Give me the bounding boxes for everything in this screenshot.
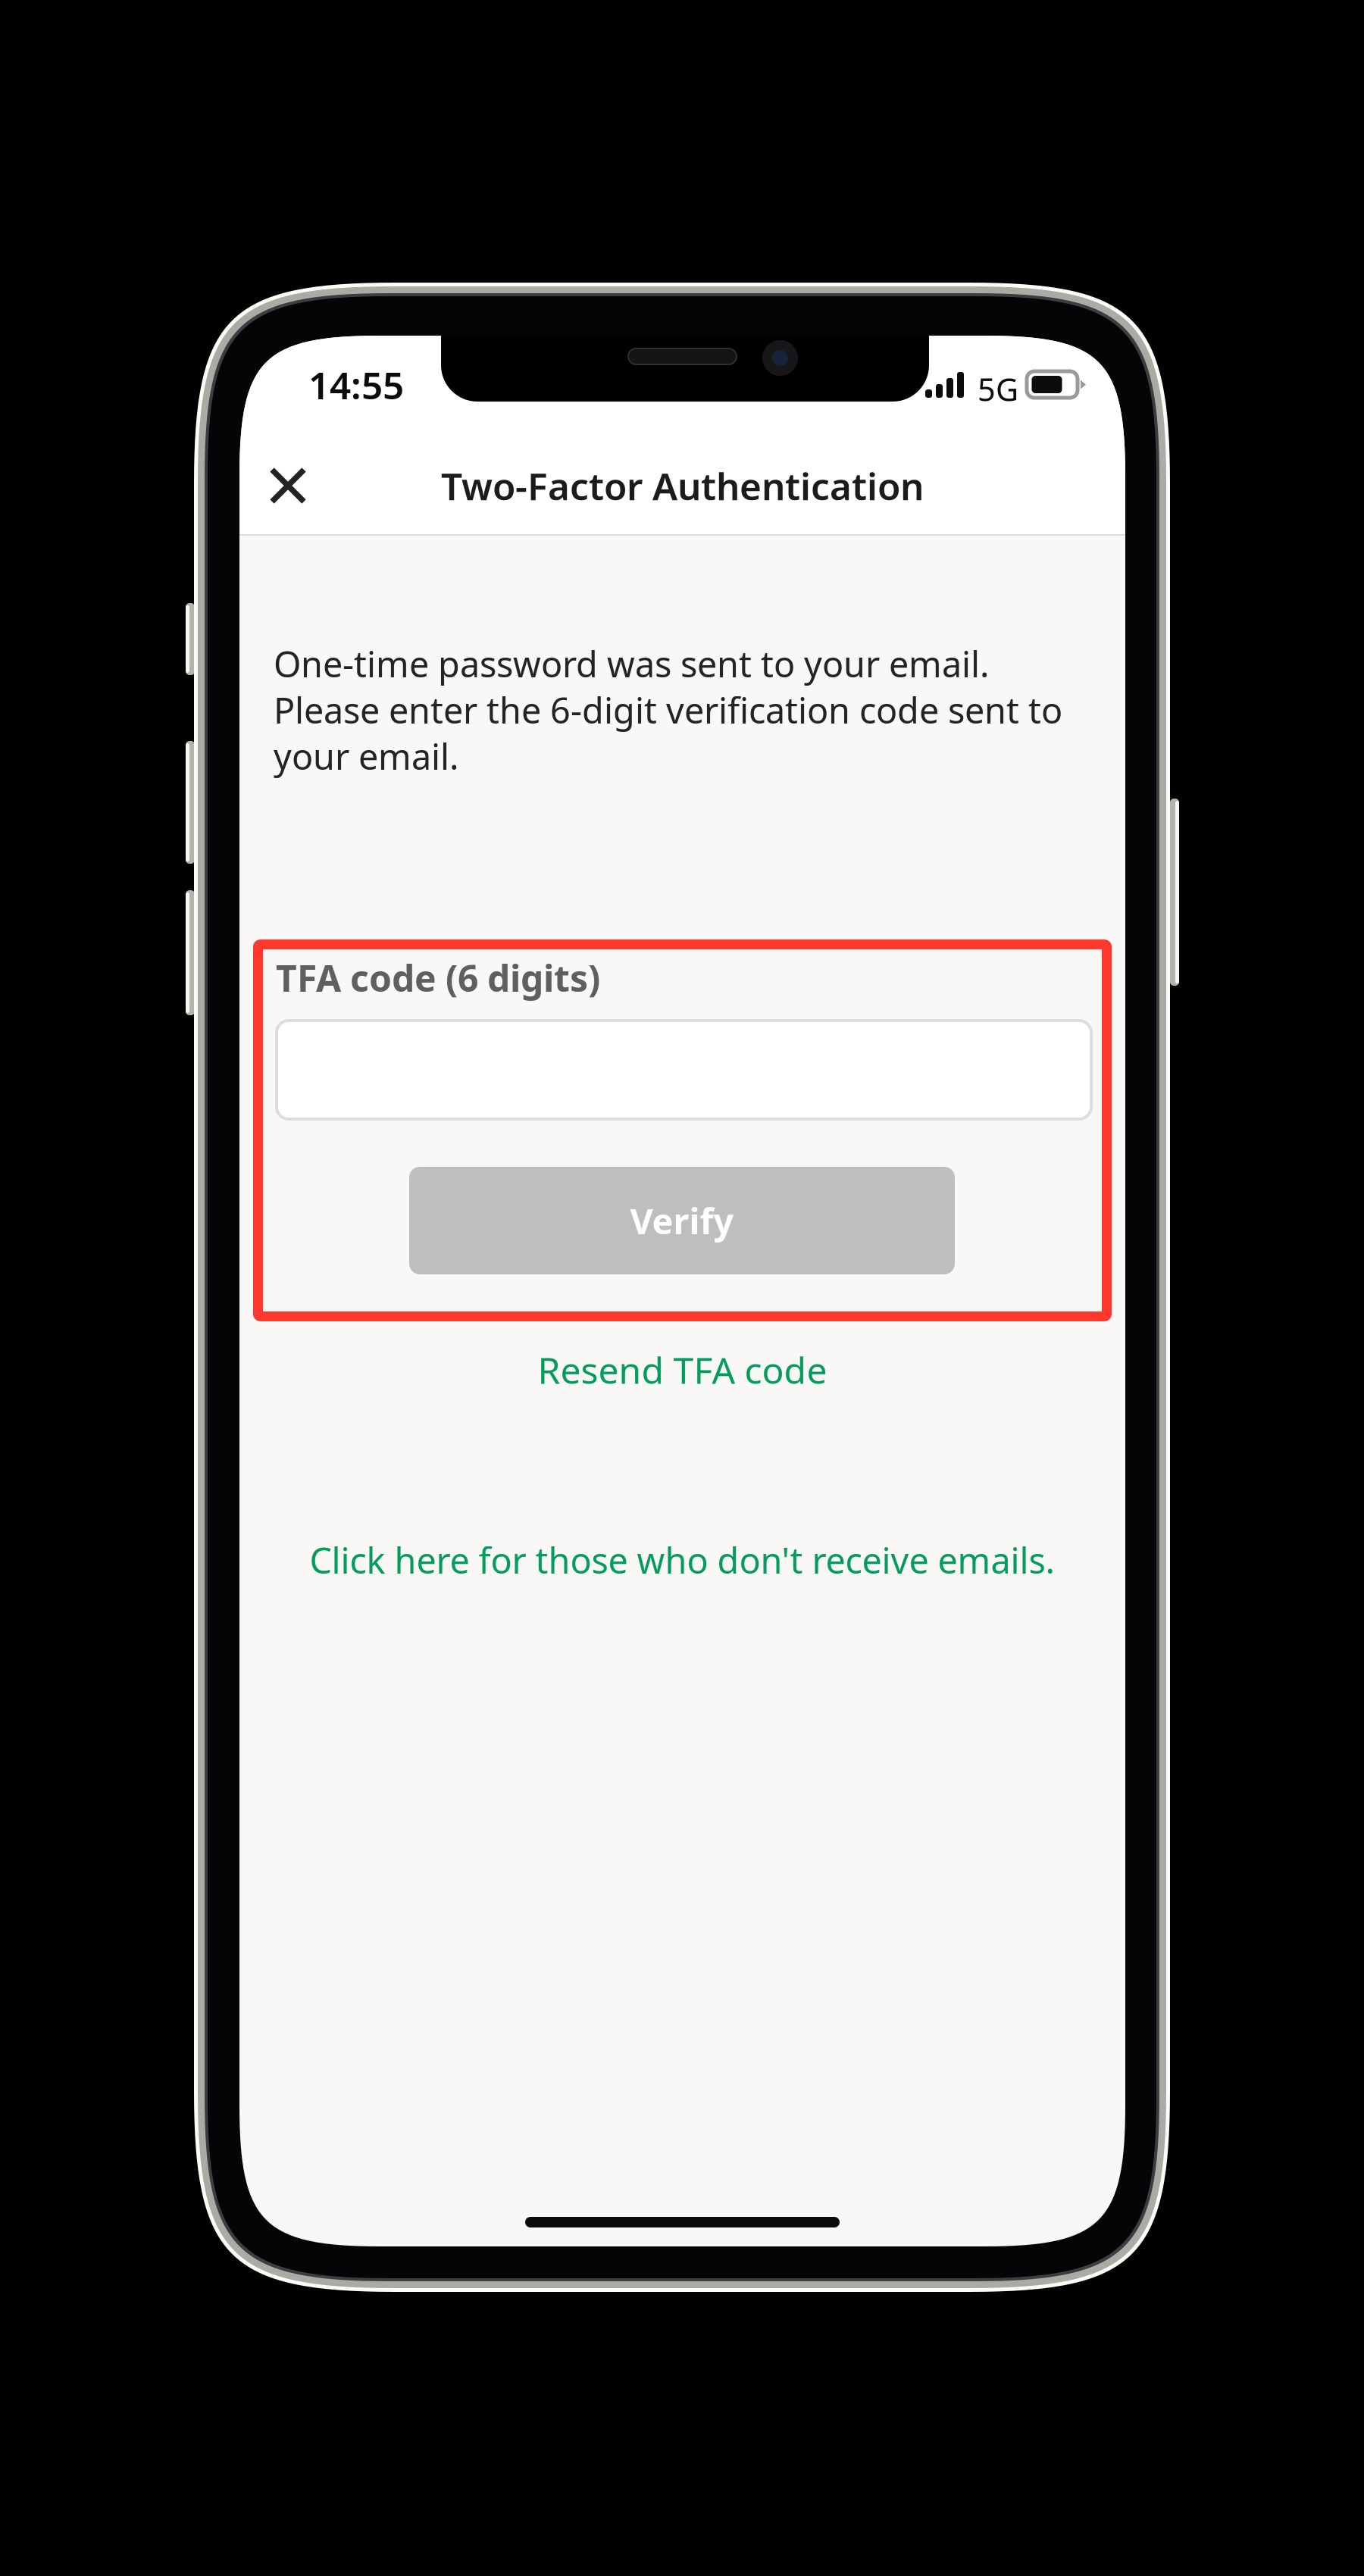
staticText: TFA code (6 digits) [276,954,600,1002]
staticText: Two-Factor Authentication [441,461,924,510]
staticText: Verify [630,1197,734,1244]
button[interactable]: Resend TFA code [537,1345,828,1395]
button[interactable]: Click here for those who don't receive e… [306,1535,1059,1585]
staticText: Click here for those who don't receive e… [310,1537,1055,1583]
staticText: 5G [978,368,1018,410]
button[interactable]: Close [242,449,333,522]
button[interactable]: Verify [409,1167,955,1274]
staticText: One-time password was sent to your email… [274,640,1062,780]
staticText: 14:55 [308,360,404,410]
staticText: Resend TFA code [538,1346,827,1394]
